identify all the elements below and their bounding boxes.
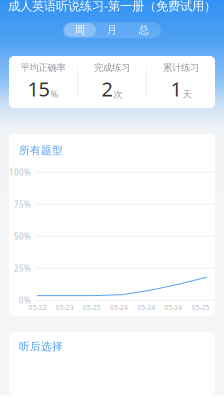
- staticText: 累计练习: [163, 62, 199, 73]
- staticText: 总: [138, 23, 149, 36]
- staticText: 成人英语听说练习-第一册（免费试用）: [8, 0, 216, 14]
- staticText: 05-25: [191, 303, 209, 312]
- staticText: 1: [170, 75, 181, 102]
- staticText: 50%: [14, 231, 31, 242]
- staticText: %: [50, 88, 58, 100]
- staticText: 平均正确率: [20, 62, 65, 73]
- staticText: 天: [182, 88, 191, 100]
- staticText: 05-22: [29, 303, 47, 312]
- staticText: 月: [106, 23, 117, 36]
- staticText: 周: [74, 23, 85, 36]
- staticText: 15: [27, 75, 49, 102]
- staticText: 听后选择: [19, 340, 63, 353]
- staticText: 05-25: [83, 303, 101, 312]
- staticText: 完成练习: [94, 62, 130, 73]
- button[interactable]: 月: [96, 23, 128, 37]
- staticText: 2: [101, 75, 112, 102]
- staticText: 75%: [14, 199, 31, 210]
- staticText: 所有题型: [19, 144, 63, 157]
- staticText: 05-24: [110, 303, 128, 312]
- button[interactable]: 周: [64, 23, 96, 37]
- staticText: 0%: [19, 295, 31, 306]
- staticText: 100%: [9, 167, 31, 178]
- staticText: 05-24: [137, 303, 155, 312]
- staticText: 05-24: [164, 303, 182, 312]
- button[interactable]: 总: [128, 23, 160, 37]
- staticText: 次: [113, 88, 122, 100]
- staticText: 25%: [14, 263, 31, 274]
- staticText: 05-23: [56, 303, 74, 312]
